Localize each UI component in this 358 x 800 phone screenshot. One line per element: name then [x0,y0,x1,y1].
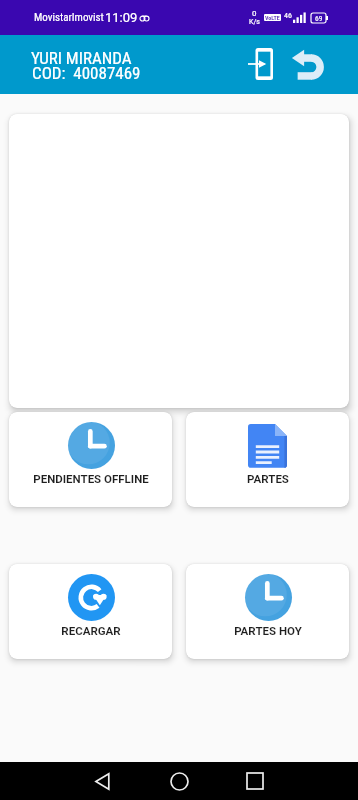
button[interactable]: PARTES [186,412,349,507]
staticText: 11:09 [105,10,138,25]
staticText: RECARGAR [61,624,121,637]
staticText: PARTES [247,472,289,485]
staticText: 69 [315,14,323,23]
button[interactable]: RECARGAR [9,564,172,659]
button[interactable]: Enviar al dispositivo [239,43,281,85]
staticText: 0 [252,9,257,18]
button[interactable]: Volver [286,46,328,88]
staticText: YURI MIRANDA [31,48,132,68]
staticText: COD: 40087469 [32,63,141,83]
staticText: K/s [249,18,260,26]
staticText: PENDIENTES OFFLINE [33,472,149,485]
button[interactable]: Inicio [163,765,195,797]
button[interactable]: Atras [86,765,118,797]
staticText: VoLTE [265,14,280,21]
button[interactable]: PARTES HOY [186,564,349,659]
staticText: MovistarImovist [34,11,104,24]
button[interactable]: PENDIENTES OFFLINE [9,412,172,507]
button[interactable]: Recientes [239,765,271,797]
staticText: 46 [284,11,292,20]
staticText: PARTES HOY [234,624,302,637]
